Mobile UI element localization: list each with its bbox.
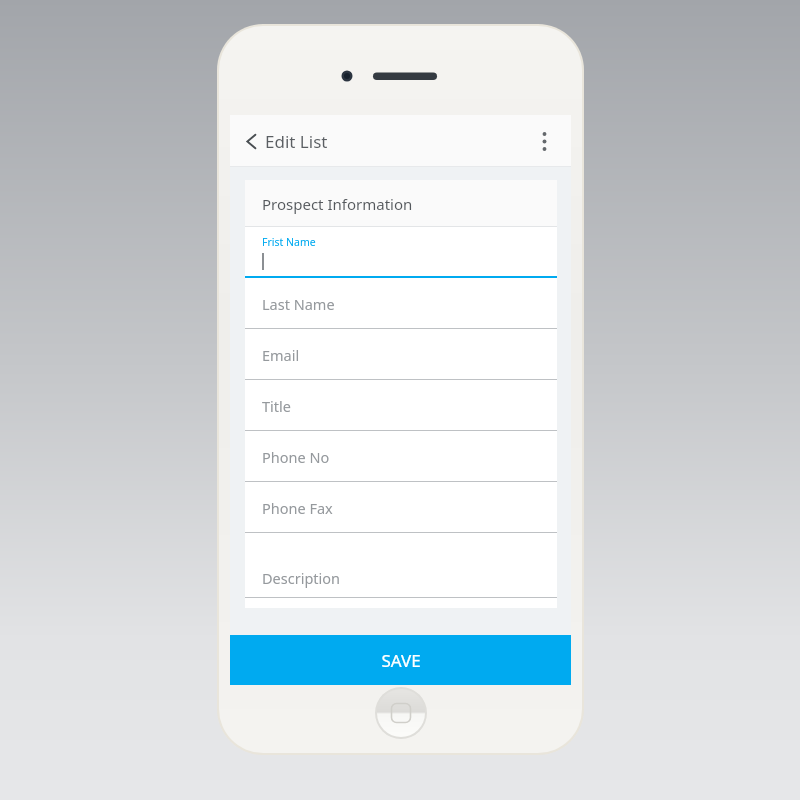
button[interactable]: Frist Name [245,227,557,278]
other: Back [245,132,258,151]
button[interactable]: Phone No [245,431,557,482]
staticText: Frist Name [262,235,316,249]
staticText: Phone Fax [262,498,333,518]
staticText: Last Name [262,294,335,314]
button[interactable]: More options [527,124,561,158]
button[interactable]: SAVE [230,635,571,685]
staticText: Email [262,345,300,365]
staticText: Description [262,568,341,588]
staticText: Edit List [265,130,328,153]
button[interactable]: Email [245,329,557,380]
button[interactable]: Title [245,380,557,431]
staticText: Title [262,396,291,416]
staticText: Prospect Information [262,194,413,214]
button[interactable]: Description [245,533,557,598]
button[interactable]: Phone Fax [245,482,557,533]
staticText: Phone No [262,447,330,467]
button[interactable]: Back [243,123,330,160]
staticText: SAVE [381,649,421,672]
button[interactable]: Last Name [245,278,557,329]
